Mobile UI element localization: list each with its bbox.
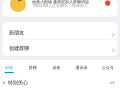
button[interactable]: 特别关心 — [0, 78, 120, 88]
staticText: 19622758人正在聊天，快来加入 — [32, 3, 88, 8]
button[interactable]: 创建群聊 — [2, 40, 117, 56]
staticText: 特别关心 — [8, 79, 28, 86]
staticText: 创建群聊 — [9, 45, 29, 52]
staticText: 公众号 — [102, 65, 114, 70]
staticText: 4/5 — [109, 80, 114, 85]
button[interactable]: 动画小剧场 邀请您加入群聊消息 — [2, 0, 117, 16]
staticText: 设备 — [52, 65, 60, 70]
button[interactable]: 好友 — [5, 65, 14, 73]
staticText: 新朋友 — [9, 29, 24, 36]
button[interactable]: 新朋友 — [2, 22, 117, 39]
staticText: 通讯录 — [75, 65, 87, 70]
staticText: 好友 — [5, 65, 13, 70]
button[interactable]: 通讯录 — [75, 65, 87, 73]
staticText: 群聊 — [29, 65, 37, 70]
button[interactable]: 群聊 — [28, 65, 37, 73]
button[interactable]: 设备 — [52, 65, 61, 73]
button[interactable]: 公众号 — [102, 65, 114, 73]
staticText: 动画小剧场 邀请您加入群聊消息 — [32, 0, 89, 4]
